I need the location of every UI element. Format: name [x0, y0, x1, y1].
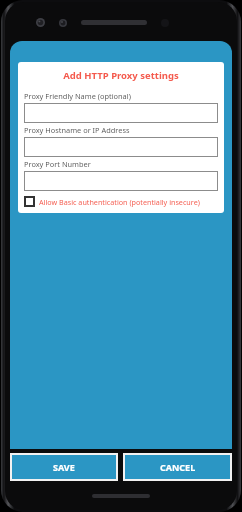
staticText: Proxy Hostname or IP Address: [24, 125, 130, 135]
button[interactable]: [24, 137, 218, 157]
staticText: CANCEL: [160, 461, 196, 473]
button[interactable]: [24, 171, 218, 191]
button[interactable]: [24, 103, 218, 123]
staticText: Proxy Friendly Name (optional): [24, 91, 131, 101]
staticText: SAVE: [53, 461, 75, 473]
button[interactable]: Allow Basic authentication (potentially …: [24, 195, 218, 208]
button[interactable]: SAVE: [12, 455, 116, 479]
staticText: Add HTTP Proxy settings: [24, 69, 218, 82]
staticText: Allow Basic authentication (potentially …: [39, 197, 200, 207]
button[interactable]: CANCEL: [125, 455, 230, 479]
staticText: Proxy Port Number: [24, 159, 91, 169]
